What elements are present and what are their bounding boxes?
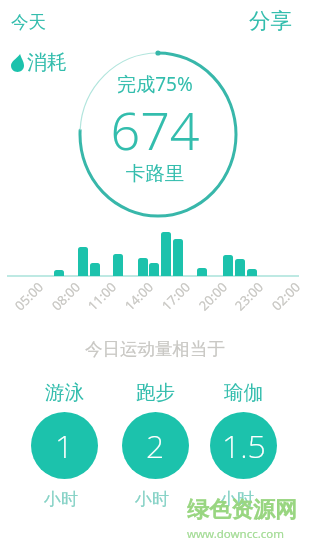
staticText: 08:00 xyxy=(48,278,84,314)
button[interactable]: 1.5 xyxy=(210,412,277,479)
button[interactable]: 2 xyxy=(122,412,189,479)
staticText: 17:00 xyxy=(158,278,194,314)
staticText: 小时 xyxy=(135,489,169,510)
button[interactable]: 1 xyxy=(31,412,98,479)
staticText: 今日运动量相当于 xyxy=(0,338,310,360)
staticText: 消耗 xyxy=(27,50,67,75)
button[interactable]: 今天 xyxy=(11,11,46,33)
staticText: 跑步 xyxy=(136,380,175,405)
staticText: 23:00 xyxy=(231,278,267,314)
staticText: 卡路里 xyxy=(0,161,310,186)
staticText: 2 xyxy=(146,424,165,468)
staticText: 游泳 xyxy=(45,380,84,405)
staticText: 小时 xyxy=(44,489,78,510)
staticText: 05:00 xyxy=(11,278,47,314)
staticText: 完成75% xyxy=(0,71,310,97)
staticText: 绿色资源网 xyxy=(187,496,297,524)
staticText: 20:00 xyxy=(195,278,231,314)
button[interactable]: 消耗 xyxy=(11,50,67,75)
staticText: 02:00 xyxy=(268,278,304,314)
staticText: 1 xyxy=(55,424,74,468)
staticText: 674 xyxy=(0,94,310,165)
staticText: 小时 xyxy=(220,489,254,510)
staticText: 1.5 xyxy=(222,424,266,468)
staticText: 11:00 xyxy=(84,278,120,314)
staticText: 14:00 xyxy=(121,278,157,314)
staticText: 瑜伽 xyxy=(224,380,263,405)
staticText: www.downcc.com xyxy=(187,526,285,542)
button[interactable]: 分享 xyxy=(249,7,292,34)
